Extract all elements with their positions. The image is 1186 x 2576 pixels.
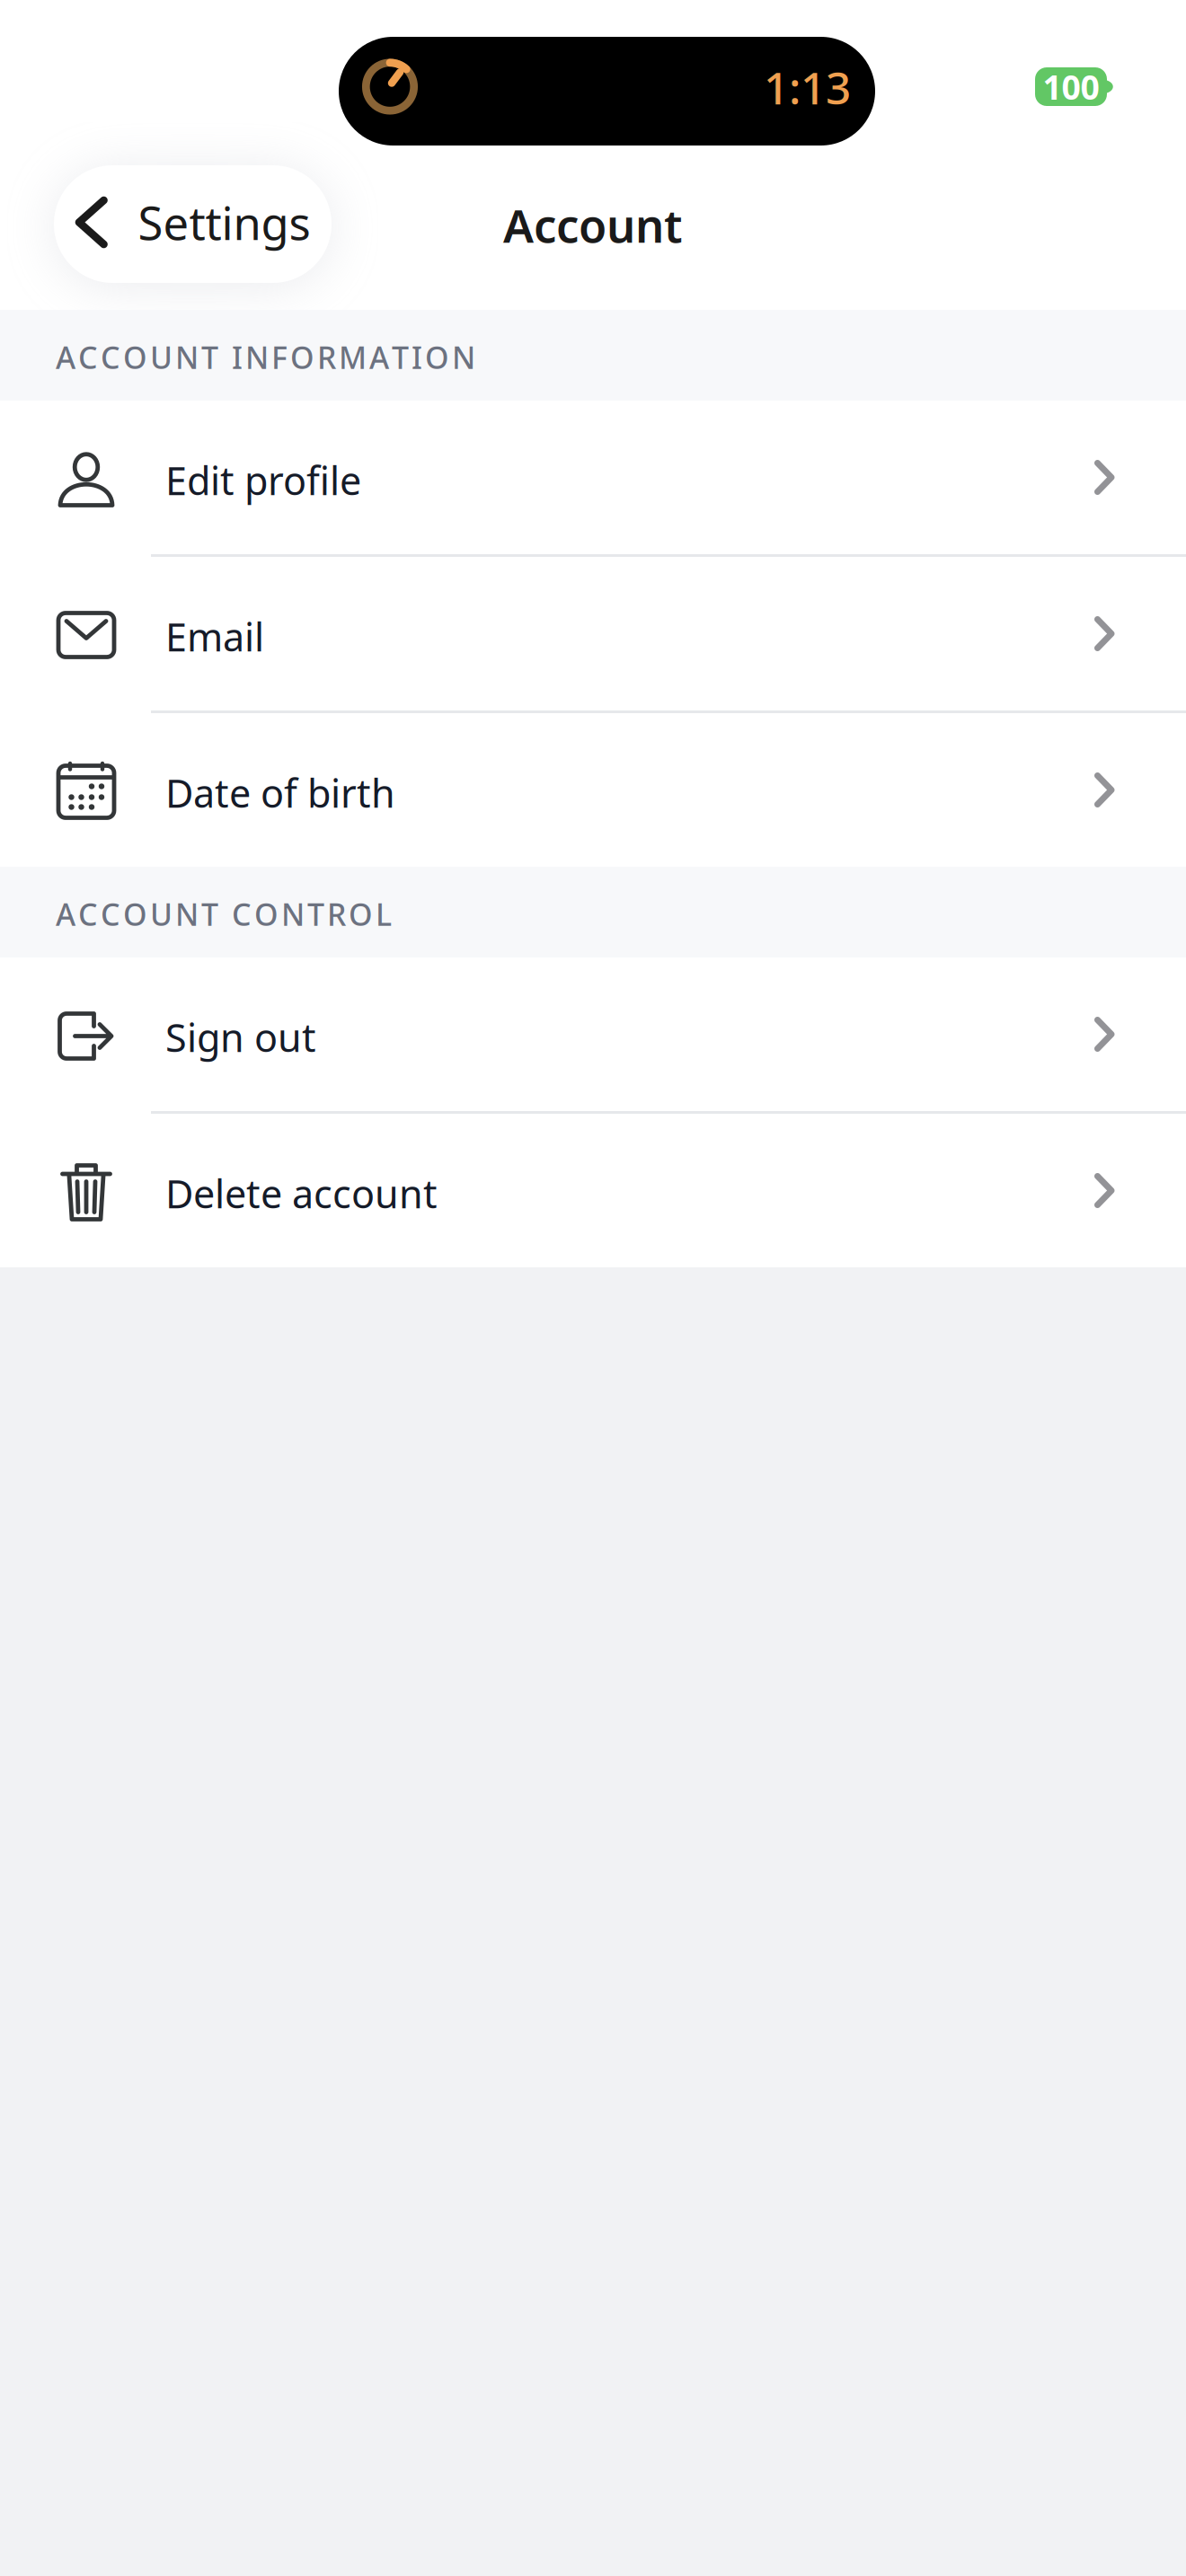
button[interactable]: Sign out	[0, 957, 1186, 1111]
staticText: Settings	[138, 191, 310, 253]
staticText: Date of birth	[165, 766, 395, 819]
button[interactable]: Settings	[54, 165, 332, 283]
staticText: 1:13	[764, 57, 851, 117]
staticText: Sign out	[165, 1011, 316, 1063]
staticText: Delete account	[165, 1167, 438, 1220]
staticText: A C C O U N T C O N T R O L	[56, 893, 392, 935]
staticText: Account	[503, 194, 683, 256]
button[interactable]: Edit profile	[0, 401, 1186, 554]
button[interactable]: Delete account	[0, 1114, 1186, 1267]
staticText: Edit profile	[165, 454, 361, 506]
button[interactable]: Email	[0, 557, 1186, 710]
staticText: Email	[165, 610, 264, 663]
staticText: A C C O U N T I N F O R M A T I O N	[56, 336, 475, 378]
staticText: 100	[1043, 64, 1099, 109]
button[interactable]: Date of birth	[0, 713, 1186, 867]
